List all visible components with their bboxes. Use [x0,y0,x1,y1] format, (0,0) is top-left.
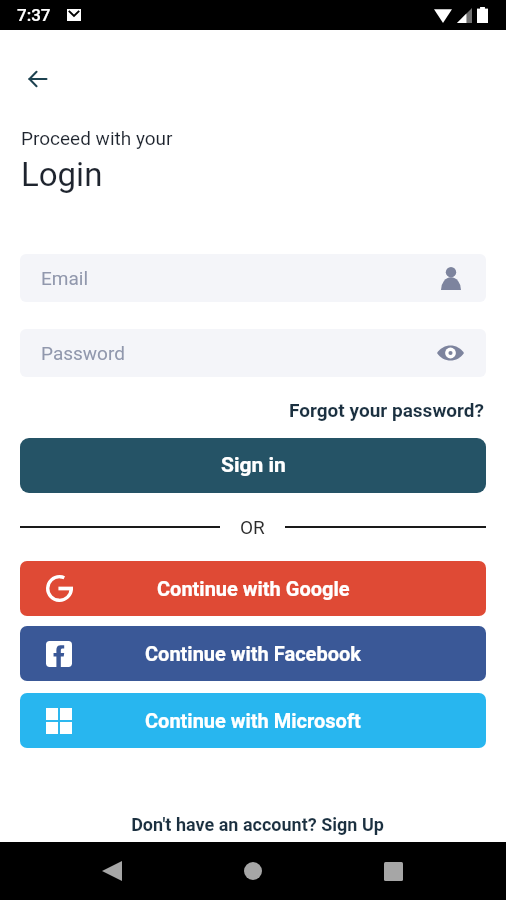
staticText: Login [21,155,103,194]
button[interactable]: Continue with Facebook [20,626,486,681]
staticText: Don't have an account? Sign Up [131,814,384,835]
staticText: Continue with Google [157,577,350,600]
staticText: Email [41,267,441,289]
staticText: Password [41,342,434,364]
button[interactable]: Navigate back [13,55,61,103]
button[interactable]: Home [229,847,277,895]
staticText: Continue with Microsoft [145,709,361,732]
button[interactable]: Don't have an account? Sign Up [0,811,506,838]
button[interactable]: Continue with Google [20,561,486,616]
staticText: Continue with Facebook [145,642,361,665]
button[interactable]: Forgot your password? [288,397,486,423]
button[interactable]: Continue with Microsoft [20,693,486,748]
button[interactable]: Email [20,254,486,302]
button[interactable]: Recent apps [369,847,417,895]
button[interactable]: Password [20,329,486,377]
staticText: OR [240,516,265,538]
staticText: Forgot your password? [289,399,485,421]
button[interactable]: Sign in [20,438,486,493]
staticText: Sign in [221,453,286,478]
staticText: Proceed with your [21,127,173,149]
button[interactable]: Back [88,847,136,895]
staticText: 7:37 [17,5,51,25]
